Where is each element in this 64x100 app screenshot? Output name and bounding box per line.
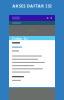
staticText: AKSES DAFTAR ISI [12,3,52,9]
staticText: Daftar Isi [11,36,27,41]
